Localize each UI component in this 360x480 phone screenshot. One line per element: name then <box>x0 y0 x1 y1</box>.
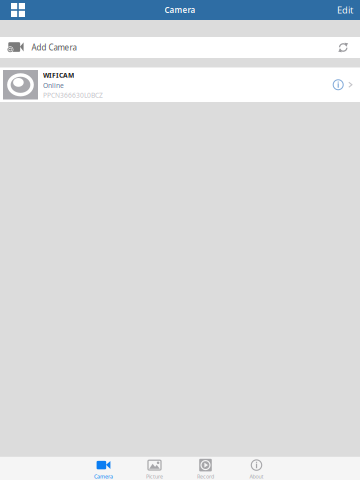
staticText: Online <box>43 81 64 90</box>
button[interactable]: Picture <box>129 456 180 480</box>
button[interactable]: About <box>231 456 282 480</box>
staticText: Edit <box>337 4 353 16</box>
button[interactable]: Camera <box>78 456 129 480</box>
staticText: Camera <box>94 473 113 480</box>
staticText: Picture <box>146 473 163 480</box>
staticText: Add Camera <box>32 42 77 53</box>
button[interactable]: Edit <box>330 0 360 20</box>
button[interactable]: Grid layout <box>0 0 36 20</box>
staticText: About <box>249 473 263 480</box>
button[interactable]: WIFICAM <box>0 67 360 102</box>
button[interactable]: Add Camera <box>0 37 360 58</box>
staticText: PPCN366630L0BCZ <box>43 91 103 100</box>
staticText: WIFICAM <box>43 71 74 80</box>
staticText: Record <box>197 473 214 480</box>
button[interactable]: Camera info <box>328 67 348 102</box>
button[interactable]: Record <box>180 456 231 480</box>
staticText: Camera <box>164 5 195 15</box>
